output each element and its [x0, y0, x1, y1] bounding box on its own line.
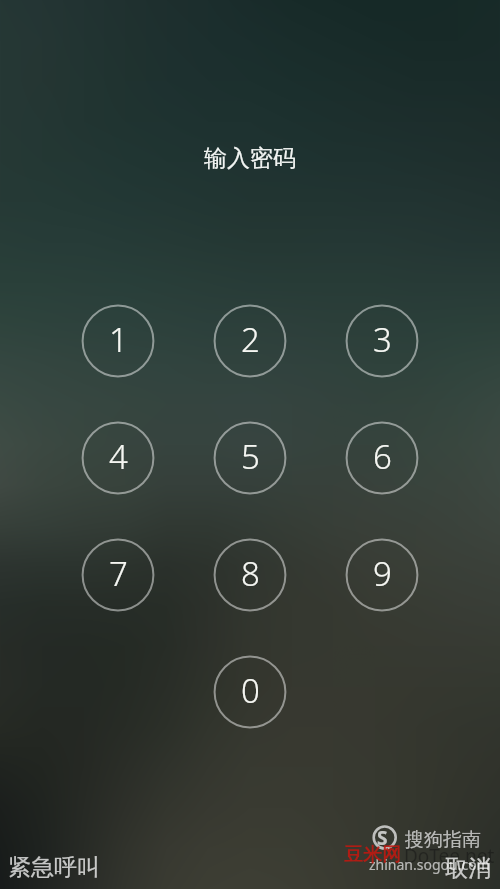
button[interactable]: 紧急呼叫 — [0, 860, 92, 889]
staticText: zhinan.sogou.com — [369, 855, 490, 874]
staticText: S — [377, 825, 388, 851]
staticText: 豆米网 — [344, 843, 401, 867]
staticText: 搜狗指南 — [405, 828, 481, 852]
button[interactable]: 取消 — [454, 860, 500, 889]
button[interactable]: 5 — [209, 417, 291, 499]
button[interactable]: 1 — [77, 300, 159, 382]
staticText: 6 — [373, 434, 392, 479]
staticText: DoTee.net — [404, 843, 495, 869]
button[interactable]: 0 — [209, 651, 291, 733]
button[interactable]: 2 — [209, 300, 291, 382]
staticText: 取消 — [445, 854, 491, 883]
staticText: 0 — [241, 668, 260, 713]
staticText: 输入密码 — [204, 144, 296, 173]
staticText: 8 — [241, 551, 260, 596]
staticText: 紧急呼叫 — [8, 853, 100, 882]
staticText: 5 — [241, 434, 260, 479]
button[interactable]: 7 — [77, 534, 159, 616]
button[interactable]: 4 — [77, 417, 159, 499]
staticText: 9 — [373, 551, 392, 596]
button[interactable]: 8 — [209, 534, 291, 616]
button[interactable]: 6 — [341, 417, 423, 499]
staticText: 1 — [109, 317, 128, 362]
button[interactable]: 9 — [341, 534, 423, 616]
staticText: 7 — [109, 551, 128, 596]
staticText: 3 — [373, 317, 392, 362]
staticText: 4 — [109, 434, 128, 479]
staticText: 2 — [241, 317, 260, 362]
button[interactable]: 3 — [341, 300, 423, 382]
